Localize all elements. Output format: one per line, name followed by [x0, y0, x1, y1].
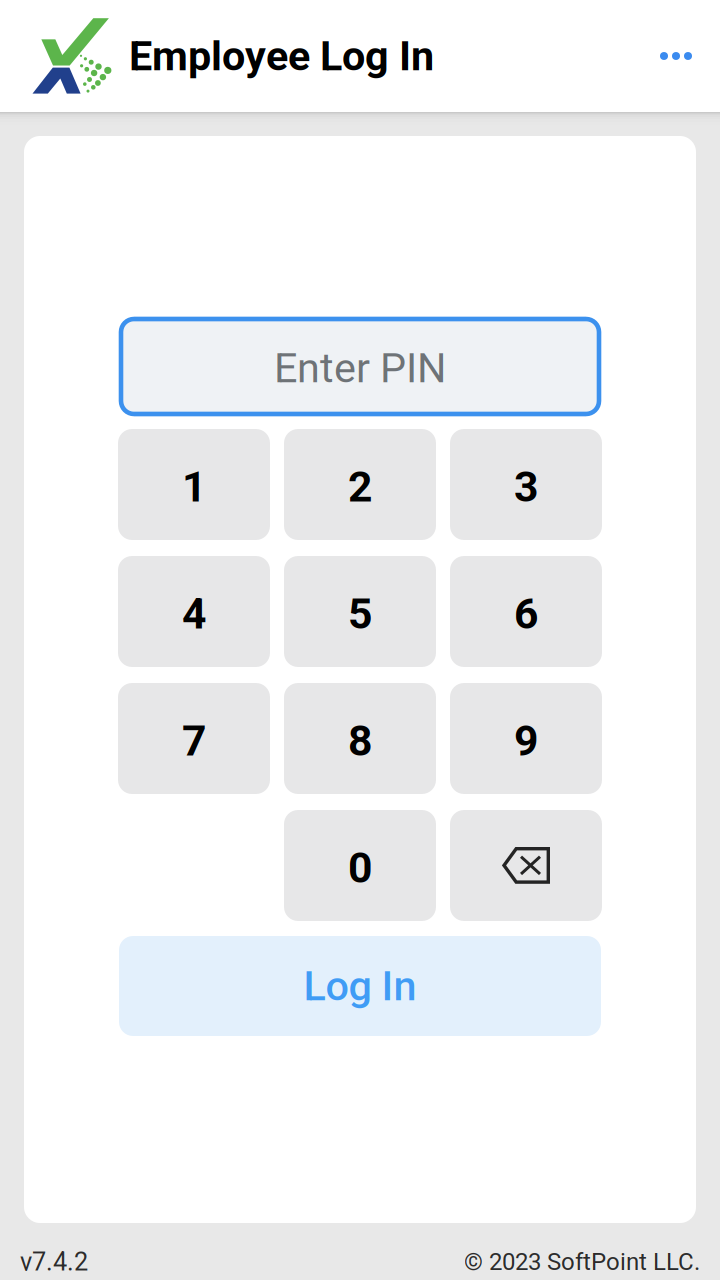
staticText: 5 [348, 589, 372, 639]
staticText: Enter PIN [274, 344, 446, 392]
staticText: 6 [514, 589, 538, 639]
staticText: 1 [182, 462, 206, 512]
button[interactable]: 8 [284, 683, 436, 794]
staticText: 7 [182, 716, 206, 766]
staticText: 8 [348, 716, 372, 766]
button[interactable]: Delete [450, 810, 602, 921]
button[interactable]: Log In [119, 936, 601, 1036]
button[interactable]: 0 [284, 810, 436, 921]
button[interactable]: 9 [450, 683, 602, 794]
button[interactable]: 7 [118, 683, 270, 794]
button[interactable]: 5 [284, 556, 436, 667]
staticText: v7.4.2 [20, 1247, 88, 1277]
staticText: Log In [303, 962, 416, 1010]
staticText: 0 [348, 843, 372, 893]
button[interactable]: 6 [450, 556, 602, 667]
staticText: 2 [348, 462, 372, 512]
staticText: 4 [182, 589, 206, 639]
button[interactable]: More options [632, 12, 720, 100]
button[interactable]: 4 [118, 556, 270, 667]
button[interactable]: 1 [118, 429, 270, 540]
button[interactable]: 3 [450, 429, 602, 540]
button[interactable]: 2 [284, 429, 436, 540]
staticText: 9 [514, 716, 538, 766]
staticText: 3 [514, 462, 538, 512]
staticText: © 2023 SoftPoint LLC. [464, 1248, 700, 1276]
staticText: Employee Log In [129, 32, 434, 80]
